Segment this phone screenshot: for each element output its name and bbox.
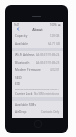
staticText: 64.71 GB <box>48 42 60 46</box>
staticText: Available <box>15 42 29 46</box>
button[interactable]: AirDrop <box>12 108 63 116</box>
staticText: AirDrop <box>15 110 27 114</box>
staticText: 89049032004008882600033581960321 <box>15 87 59 90</box>
staticText: 4.02.01 <box>50 68 60 72</box>
button[interactable]: Capacity <box>12 32 63 40</box>
staticText: 100% <box>50 23 57 27</box>
staticText: Contacts Only <box>41 110 60 114</box>
button[interactable]: Carrier Lock <box>12 91 63 97</box>
staticText: About <box>12 27 63 32</box>
button[interactable]: EID <box>12 81 63 91</box>
button[interactable]: Wi-Fi Address <box>12 51 63 59</box>
button[interactable]: SEID <box>12 74 63 82</box>
staticText: 128 GB <box>50 34 60 38</box>
staticText: Modem Firmware <box>15 68 41 72</box>
staticText: No SIM restrictions <box>34 92 60 96</box>
staticText: Carrier Lock <box>15 92 33 96</box>
staticText: A4:83:E7:91:B6:25 <box>36 61 60 65</box>
staticText: 9:41 <box>14 23 20 27</box>
staticText: Capacity <box>15 34 28 38</box>
button[interactable]: Back <box>15 26 21 32</box>
staticText: SEID <box>15 76 22 80</box>
button[interactable]: Bluetooth <box>12 59 63 67</box>
staticText: Available SIMs <box>15 103 36 107</box>
button[interactable]: Available SIMs <box>12 101 63 109</box>
button[interactable]: Available <box>12 40 63 48</box>
button[interactable]: Modem Firmware <box>12 66 63 74</box>
button[interactable]: Home <box>34 120 42 128</box>
staticText: Bluetooth <box>15 61 30 65</box>
staticText: EID <box>15 82 21 86</box>
staticText: A4:83:E7:91:B6:24 <box>36 53 60 57</box>
staticText: Wi-Fi Address <box>15 53 35 57</box>
